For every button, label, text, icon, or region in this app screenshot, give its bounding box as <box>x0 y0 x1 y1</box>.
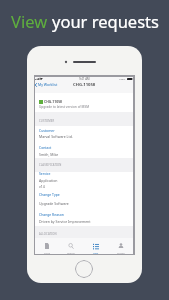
staticText: Application <box>39 178 58 183</box>
staticText: your requests <box>52 10 159 32</box>
button[interactable]: Change Reason <box>35 211 133 217</box>
staticText: Upgrade to latest version of MSM <box>39 105 90 109</box>
staticText: Customer <box>39 128 55 133</box>
staticText: View <box>11 10 52 32</box>
staticText: Upgrade Software <box>39 201 69 206</box>
staticText: CLASSIFICATION <box>39 163 62 167</box>
staticText: Change Type <box>39 192 60 197</box>
button[interactable]: Work <box>35 238 59 254</box>
button[interactable]: Change Type <box>35 191 133 197</box>
staticText: Smith, Mike <box>39 152 59 157</box>
staticText: Marval Software Ltd. <box>39 134 73 139</box>
staticText: CHG-11058 <box>73 82 96 88</box>
staticText: Change Reason <box>39 212 64 217</box>
staticText: CHG-11058 <box>44 99 63 104</box>
staticText: Work <box>44 251 51 254</box>
button[interactable]: Search <box>59 238 83 254</box>
button[interactable]: Customer <box>35 127 133 133</box>
staticText: CUSTOMER <box>39 119 55 123</box>
staticText: v14 <box>39 184 45 189</box>
staticText: Profile <box>117 251 125 254</box>
staticText: Lists <box>93 251 99 254</box>
staticText: 9:41 AM <box>79 77 90 81</box>
staticText: My Worklist <box>38 82 58 87</box>
button[interactable]: Contact <box>35 144 133 150</box>
staticText: ALLOCATION <box>39 232 57 236</box>
button[interactable]: Profile <box>108 238 133 254</box>
button[interactable]: My Worklist <box>33 80 60 89</box>
staticText: Driven by Service Improvement <box>39 219 91 224</box>
staticText: Service <box>39 171 51 176</box>
button[interactable]: Lists <box>83 238 108 254</box>
staticText: 100% <box>119 77 126 80</box>
staticText: Contact <box>39 145 52 150</box>
staticText: Search <box>67 251 75 254</box>
button[interactable]: Service <box>35 170 133 176</box>
